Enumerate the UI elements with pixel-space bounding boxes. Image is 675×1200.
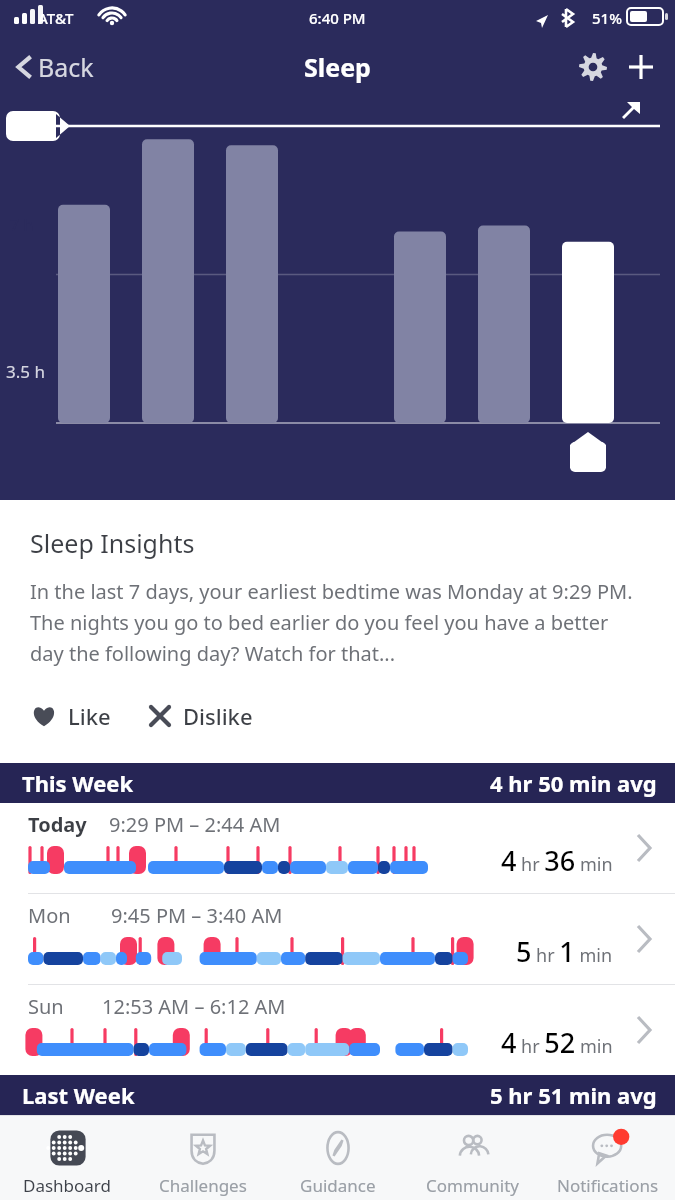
staticText: AT&T (38, 8, 74, 28)
button[interactable]: Notifications (540, 1116, 675, 1200)
button[interactable]: Add (617, 43, 665, 91)
staticText: Sleep (304, 50, 371, 84)
button[interactable]: Sun (0, 985, 675, 1075)
staticText: 4 hr 36 min (501, 842, 613, 879)
staticText: W (75, 538, 94, 564)
staticText: 4 hr 52 min (501, 1024, 613, 1061)
staticText: In the last 7 days, your earliest bedtim… (30, 578, 647, 667)
staticText: Mon (28, 902, 71, 929)
button[interactable]: Today (0, 803, 675, 893)
button[interactable]: Guidance (270, 1116, 405, 1200)
staticText: Last Week (22, 1080, 135, 1110)
staticText: Dashboard (23, 1174, 112, 1197)
staticText: 5 hr 51 min avg (490, 1080, 657, 1110)
staticText: T (163, 538, 174, 564)
staticText: 6:40 PM (309, 8, 366, 28)
button[interactable]: Mon (0, 894, 675, 984)
staticText: Like (68, 701, 111, 731)
staticText: 3.5 h (6, 360, 45, 383)
button[interactable]: Dislike (147, 695, 255, 737)
staticText: 12:53 AM – 6:12 AM (102, 993, 286, 1020)
staticText: Sun (28, 993, 64, 1020)
staticText: 51% (592, 8, 622, 28)
button[interactable]: Last Week (0, 1075, 675, 1115)
staticText: Guidance (300, 1174, 376, 1197)
staticText: 9:29 PM – 2:44 AM (109, 811, 281, 838)
staticText: Notifications (557, 1174, 659, 1197)
staticText: Community (426, 1174, 520, 1197)
button[interactable]: Challenges (135, 1116, 270, 1200)
staticText: Sleep Insights (30, 526, 195, 560)
staticText: Dislike (183, 701, 253, 731)
button[interactable]: This Week (0, 763, 675, 803)
staticText: 4 hr 50 min avg (490, 768, 657, 798)
staticText: Back (38, 50, 94, 84)
staticText: Challenges (159, 1174, 247, 1197)
staticText: 5 hr 1 min (516, 933, 613, 970)
button[interactable]: Like (30, 695, 113, 737)
staticText: Today (28, 811, 87, 838)
button[interactable]: Settings (569, 43, 617, 91)
staticText: This Week (22, 768, 134, 798)
staticText: 9:45 PM – 3:40 AM (111, 902, 283, 929)
button[interactable]: Community (405, 1116, 540, 1200)
button[interactable]: Back (0, 44, 104, 90)
button[interactable]: Dashboard (0, 1116, 135, 1200)
